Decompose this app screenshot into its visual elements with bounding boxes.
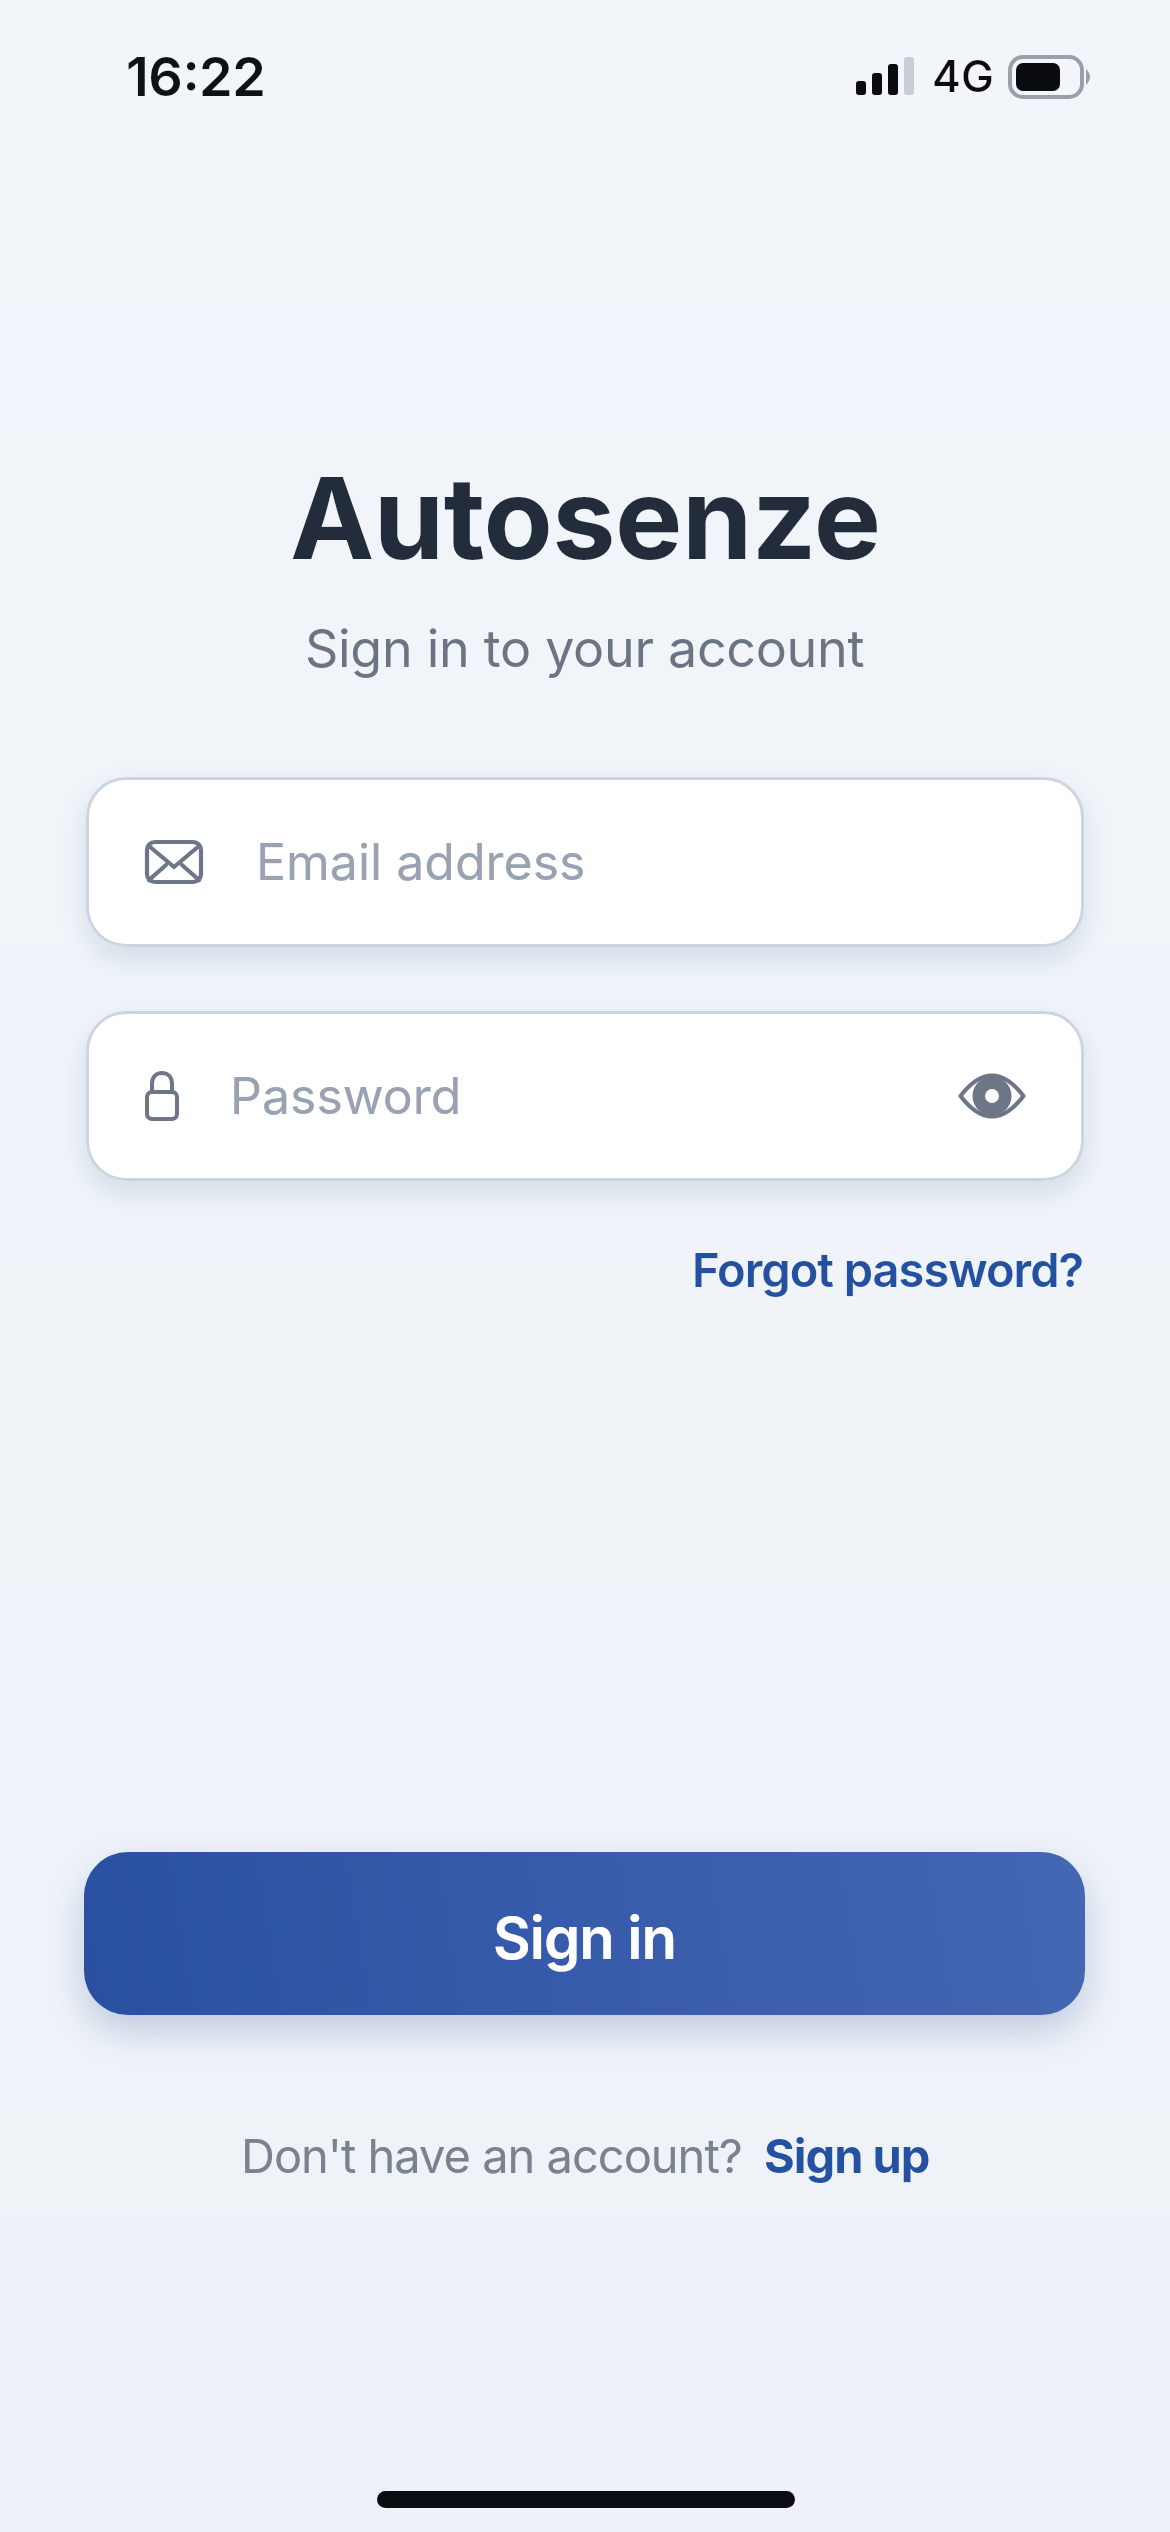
button[interactable]: Forgot password? xyxy=(692,1241,1084,1298)
staticText: Sign in xyxy=(493,1903,676,1973)
staticText: 4G xyxy=(932,49,994,102)
button[interactable] xyxy=(958,1074,1026,1118)
button[interactable]: Password xyxy=(86,1011,1084,1181)
staticText: Password xyxy=(230,1066,462,1126)
staticText: Sign in to your account xyxy=(305,617,865,680)
button[interactable]: Email address xyxy=(86,777,1084,947)
button[interactable]: Sign up xyxy=(764,2127,930,2184)
staticText: Email address xyxy=(256,832,586,892)
staticText: 16:22 xyxy=(126,44,266,109)
staticText: Autosenze xyxy=(290,450,881,587)
staticText: Don't have an account? xyxy=(241,2127,742,2184)
button[interactable]: Sign in xyxy=(84,1852,1085,2015)
